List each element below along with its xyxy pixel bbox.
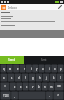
button[interactable]: z — [11, 82, 18, 91]
staticText: c — [26, 85, 28, 89]
button[interactable]: b — [36, 82, 42, 91]
button[interactable]: f — [22, 73, 29, 82]
button[interactable]: i — [46, 64, 52, 73]
button[interactable]: Send — [0, 56, 24, 64]
staticText: m — [50, 85, 53, 89]
button[interactable]: h — [36, 73, 43, 82]
button[interactable]: t — [28, 64, 34, 73]
staticText: a — [3, 76, 5, 80]
staticText: z — [14, 85, 16, 89]
staticText: u — [42, 67, 44, 71]
button[interactable]: j — [43, 73, 50, 82]
button[interactable]: Shift — [0, 82, 11, 91]
staticText: y — [36, 67, 38, 71]
button[interactable]: Enter — [53, 91, 64, 100]
button[interactable]: u — [40, 64, 46, 73]
staticText: p — [60, 67, 62, 71]
button[interactable]: Space — [18, 91, 46, 100]
button[interactable]: p — [58, 64, 64, 73]
staticText: d — [18, 76, 20, 80]
staticText: ⏎ — [57, 94, 60, 97]
staticText: r — [24, 67, 26, 71]
staticText: t — [31, 67, 32, 71]
button[interactable]: k — [50, 73, 57, 82]
button[interactable]: d — [15, 73, 22, 82]
button[interactable]: Backspace — [54, 82, 64, 91]
staticText: . — [49, 94, 50, 98]
staticText: j — [46, 76, 47, 80]
staticText: ⇧ — [4, 85, 7, 88]
button[interactable]: n — [42, 82, 48, 91]
button[interactable]: , — [11, 91, 18, 100]
staticText: b — [38, 85, 40, 89]
button[interactable]: . — [46, 91, 53, 100]
staticText: q — [3, 67, 5, 71]
staticText: , — [14, 94, 15, 98]
button[interactable]: x — [18, 82, 24, 91]
staticText: h — [39, 76, 41, 80]
staticText: v — [32, 85, 34, 89]
staticText: g — [32, 76, 34, 80]
staticText: f — [25, 76, 26, 80]
button[interactable]: m — [48, 82, 54, 91]
button[interactable]: o — [52, 64, 58, 73]
button[interactable]: q — [0, 64, 7, 73]
staticText: e — [17, 67, 19, 71]
button[interactable]: v — [30, 82, 36, 91]
staticText: w — [9, 67, 12, 71]
staticText: Inbox — [8, 5, 18, 10]
button[interactable]: g — [29, 73, 36, 82]
staticText: n — [44, 85, 46, 89]
staticText: i — [49, 67, 50, 71]
button[interactable]: c — [24, 82, 30, 91]
button[interactable]: w — [7, 64, 14, 73]
button[interactable]: l — [57, 73, 64, 82]
button[interactable]: e — [14, 64, 21, 73]
button[interactable]: r — [21, 64, 28, 73]
staticText: s — [11, 76, 13, 80]
staticText: Send — [8, 58, 16, 62]
button[interactable]: a — [0, 73, 8, 82]
staticText: o — [54, 67, 56, 71]
staticText: ?123 — [3, 94, 9, 98]
staticText: Sent — [41, 58, 47, 62]
staticText: ⌫ — [57, 85, 61, 88]
button[interactable]: y — [34, 64, 40, 73]
button[interactable]: ?123 — [0, 91, 11, 100]
button[interactable]: Edit — [57, 4, 63, 10]
button[interactable]: App icon — [1, 5, 6, 10]
staticText: x — [20, 85, 22, 89]
staticText: l — [60, 76, 61, 80]
staticText: k — [53, 76, 55, 80]
button[interactable]: s — [8, 73, 15, 82]
